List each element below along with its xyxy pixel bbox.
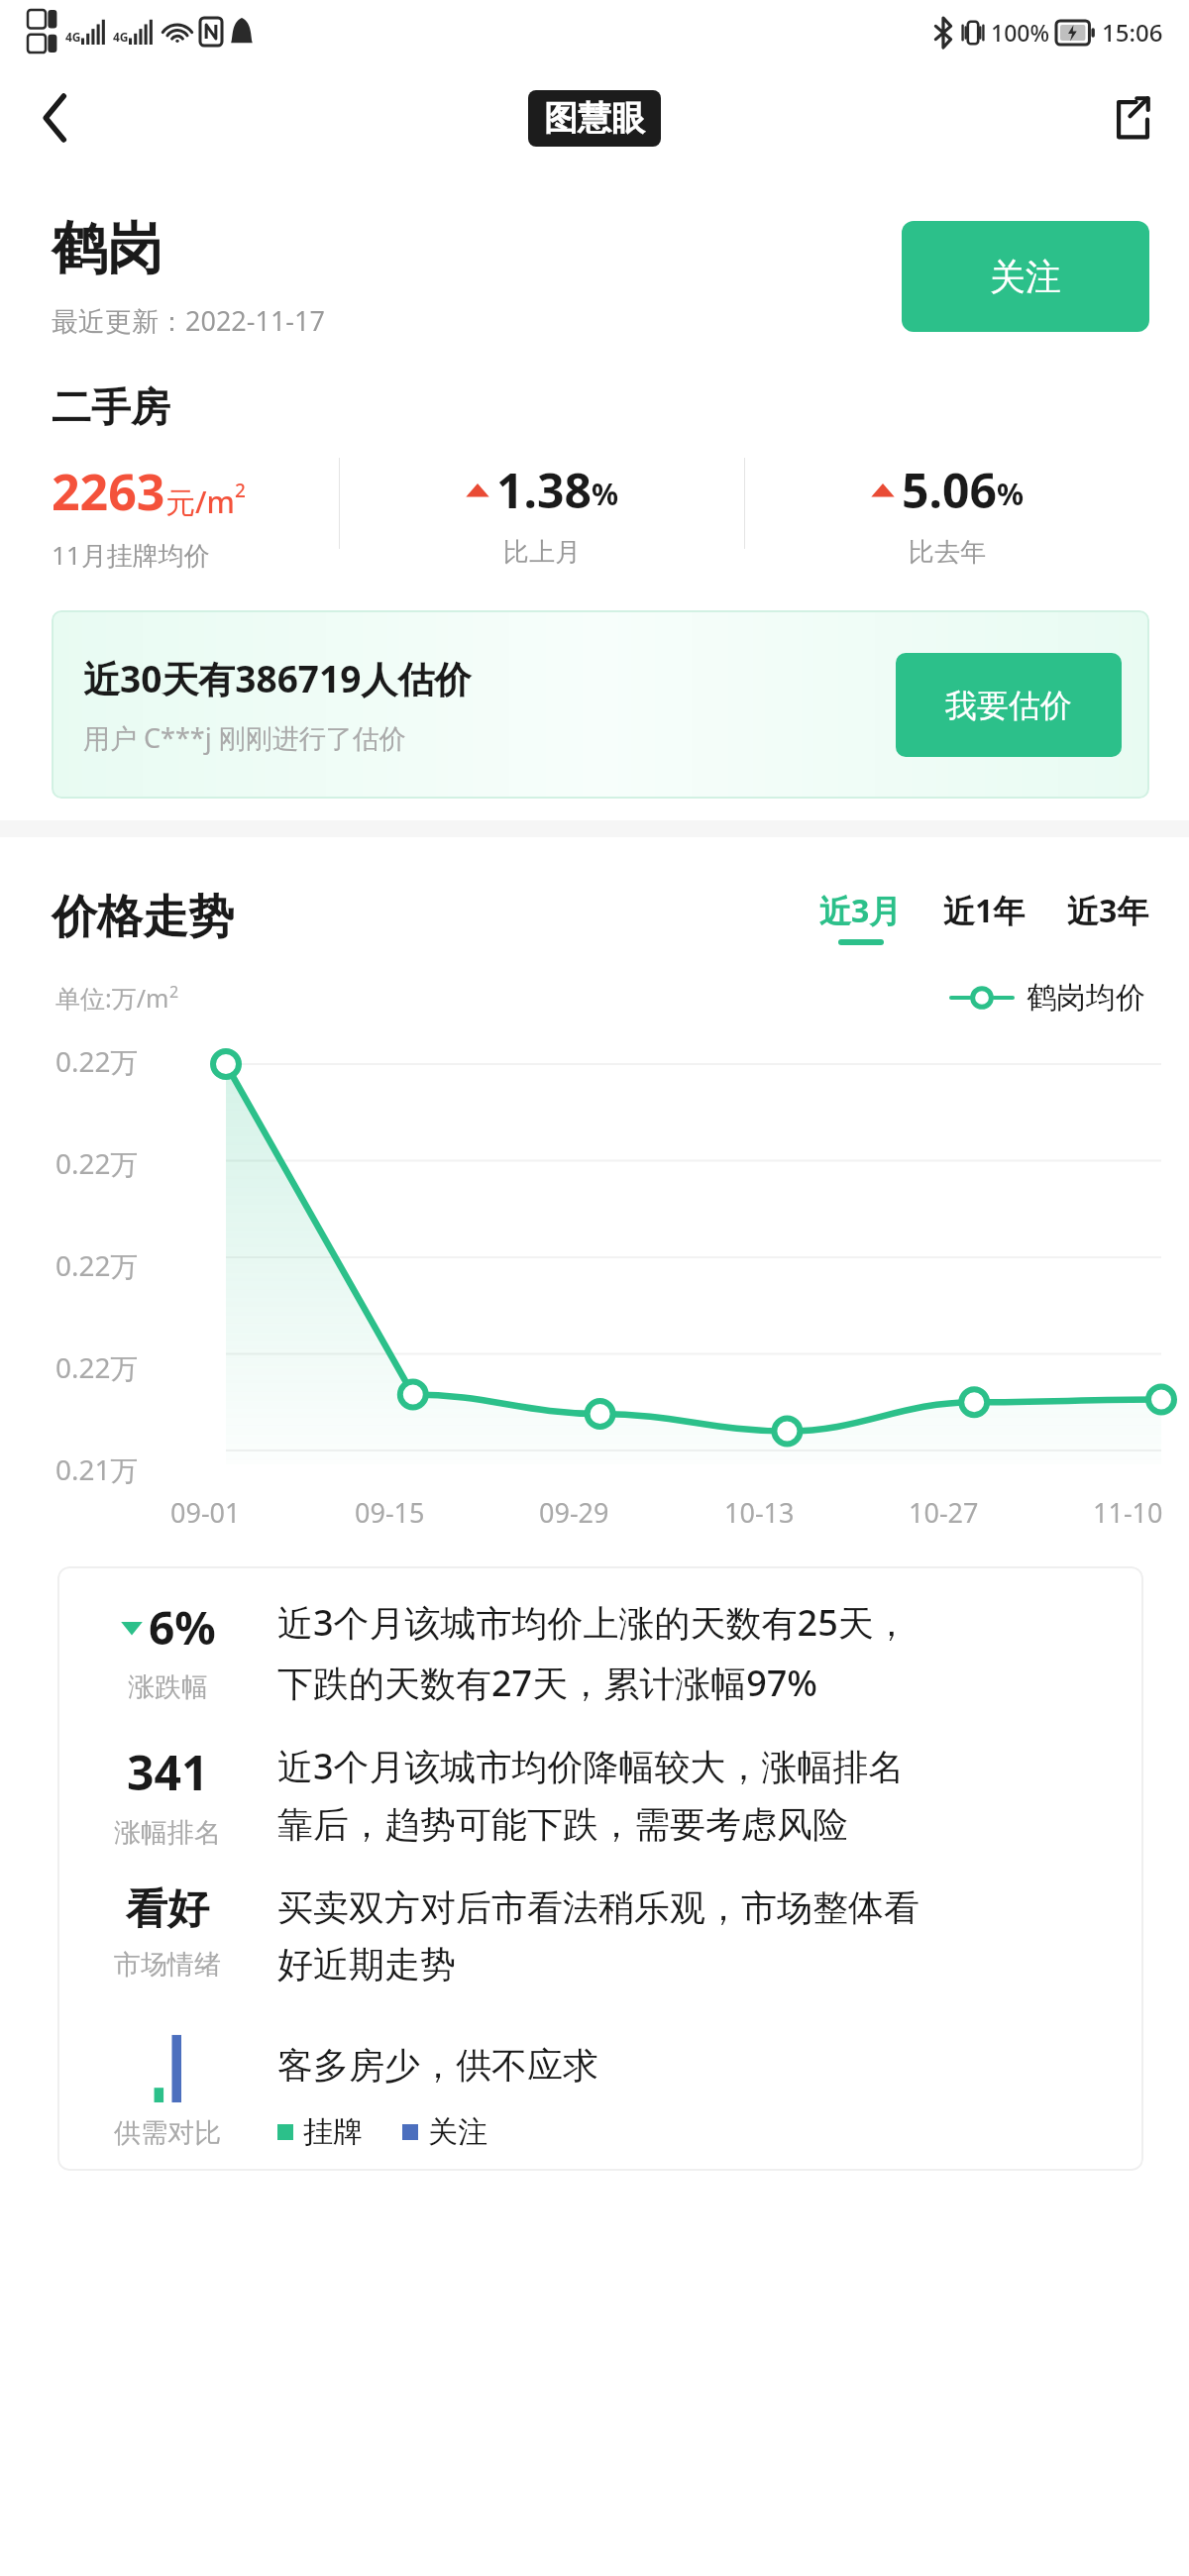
staticText: 涨跌幅 [128, 1670, 208, 1704]
staticText: % [592, 474, 619, 514]
staticText: 0.22万 [55, 1144, 139, 1182]
staticText: 11-10 [1093, 1494, 1163, 1531]
button[interactable]: 我要估价 [896, 653, 1122, 757]
staticText: 1.38 [496, 458, 592, 522]
staticText: 买卖双方对后市看法稍乐观，市场整体看 好近期走势 [277, 1885, 1143, 1987]
staticText: 341 [127, 1740, 209, 1804]
staticText: 100% [991, 17, 1050, 48]
staticText: 比上月 [503, 536, 581, 569]
staticText: 挂牌 [303, 2113, 363, 2151]
staticText: 图慧眼 [544, 97, 645, 140]
staticText: 6% [149, 1596, 216, 1659]
staticText: 鹤岗均价 [1027, 979, 1145, 1017]
staticText: 关注 [990, 255, 1061, 299]
staticText: 近3个月该城市均价降幅较大，涨幅排名 靠后，趋势可能下跌，需要考虑风险 [277, 1742, 1143, 1848]
staticText: 供需对比 [114, 2116, 221, 2150]
button[interactable]: 近3年 [1067, 885, 1149, 949]
button[interactable]: 近3月 [819, 885, 902, 949]
button[interactable]: Share [1096, 82, 1167, 154]
staticText: 近3年 [1067, 889, 1149, 932]
staticText: 鹤岗 [52, 214, 162, 284]
staticText: 0.21万 [55, 1450, 139, 1488]
staticText: 看好 [126, 1883, 209, 1936]
staticText: 近30天有386719人估价 [83, 653, 472, 703]
staticText: 近1年 [943, 889, 1026, 932]
staticText: 我要估价 [945, 686, 1072, 725]
staticText: % [997, 474, 1025, 514]
button[interactable]: Back [20, 82, 91, 154]
staticText: 二手房 [52, 382, 170, 432]
staticText: 09-01 [170, 1494, 241, 1531]
staticText: 11月挂牌均价 [52, 537, 210, 573]
staticText: 15:06 [1102, 16, 1163, 49]
staticText: 元/m [165, 482, 235, 522]
staticText: 09-29 [539, 1494, 609, 1531]
button[interactable]: 近1年 [943, 885, 1026, 949]
button[interactable]: 关注 [902, 221, 1149, 332]
staticText: 4G [65, 29, 81, 45]
staticText: 价格走势 [52, 889, 234, 946]
staticText: 10-27 [909, 1494, 979, 1531]
staticText: 关注 [428, 2113, 487, 2151]
staticText: 市场情绪 [114, 1948, 221, 1982]
staticText: 0.22万 [55, 1348, 139, 1386]
button[interactable]: 近30天有386719人估价 [52, 610, 1149, 799]
staticText: 用户 C***j 刚刚进行了估价 [83, 719, 406, 756]
staticText: 0.22万 [55, 1246, 139, 1284]
staticText: 近3个月该城市均价上涨的天数有25天， 下跌的天数有27天，累计涨幅97% [277, 1598, 1143, 1706]
staticText: 2 [235, 478, 246, 503]
staticText: 涨幅排名 [114, 1816, 221, 1850]
staticText: 近3月 [819, 889, 902, 932]
staticText: 10-13 [724, 1494, 795, 1531]
staticText: 单位:万/m [55, 981, 169, 1015]
staticText: 最近更新：2022-11-17 [52, 302, 325, 339]
staticText: 2 [169, 981, 179, 1003]
staticText: 0.22万 [55, 1042, 139, 1080]
staticText: 4G [113, 29, 129, 45]
staticText: 09-15 [355, 1494, 425, 1531]
staticText: 比去年 [909, 536, 986, 569]
staticText: 2263 [52, 458, 165, 525]
staticText: 客多房少，供不应求 [277, 2043, 598, 2088]
staticText: 5.06 [902, 458, 997, 522]
